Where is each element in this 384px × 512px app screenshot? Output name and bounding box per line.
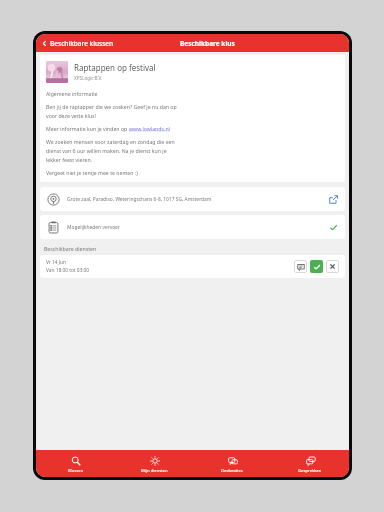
staticText: www.lowlands.nl: [129, 125, 170, 132]
staticText: lekker feest vieren.: [46, 156, 93, 163]
staticText: Klussen: [68, 468, 84, 474]
button[interactable]: Accepteren: [310, 260, 323, 273]
button[interactable]: Open in maps: [327, 193, 339, 205]
staticText: XPSLogic B.V.: [74, 75, 103, 81]
button[interactable]: Gesprekken: [271, 450, 349, 477]
staticText: Mijn diensten: [141, 468, 168, 474]
staticText: voor deze vette klus!: [46, 112, 96, 119]
staticText: We zoeken mensen voor zaterdag en zondag…: [46, 138, 175, 145]
button[interactable]: Beschikbare klussen: [36, 37, 120, 50]
staticText: Vergeet niet je tentje mee te nemen :): [46, 169, 138, 176]
button[interactable]: Mijn diensten: [115, 450, 193, 477]
button[interactable]: Mogelijkheden vervoer: [40, 215, 345, 239]
staticText: Van 18:00 tot 03:00: [46, 267, 90, 274]
staticText: dienst van 6 uur willen maken. Na je die…: [46, 147, 167, 154]
button[interactable]: Klussen: [36, 450, 115, 477]
staticText: Meer informatie kun je vinden op: [46, 125, 129, 132]
button[interactable]: www.lowlands.nl: [129, 125, 170, 132]
staticText: Grote zaal, Paradiso, Weteringschans 6-8…: [67, 196, 212, 203]
button[interactable]: Grote zaal, Paradiso, Weteringschans 6-8…: [40, 187, 345, 211]
button[interactable]: Weigeren: [326, 260, 339, 273]
staticText: Beschikbare diensten: [44, 245, 97, 252]
button[interactable]: Declaraties: [193, 450, 271, 477]
staticText: Beschikbare klus: [180, 39, 235, 48]
staticText: Ben jij de raptapper die we zoeken? Geef…: [46, 103, 177, 110]
button[interactable]: Bericht: [294, 260, 307, 273]
staticText: Declaraties: [221, 468, 243, 474]
staticText: Raptappen op festival: [74, 62, 156, 73]
staticText: Mogelijkheden vervoer: [67, 224, 120, 231]
staticText: Vr 14 Jun: [46, 259, 67, 266]
staticText: Algemene informatie: [46, 90, 98, 97]
staticText: Gesprekken: [298, 468, 322, 474]
staticText: Beschikbare klussen: [50, 39, 114, 48]
